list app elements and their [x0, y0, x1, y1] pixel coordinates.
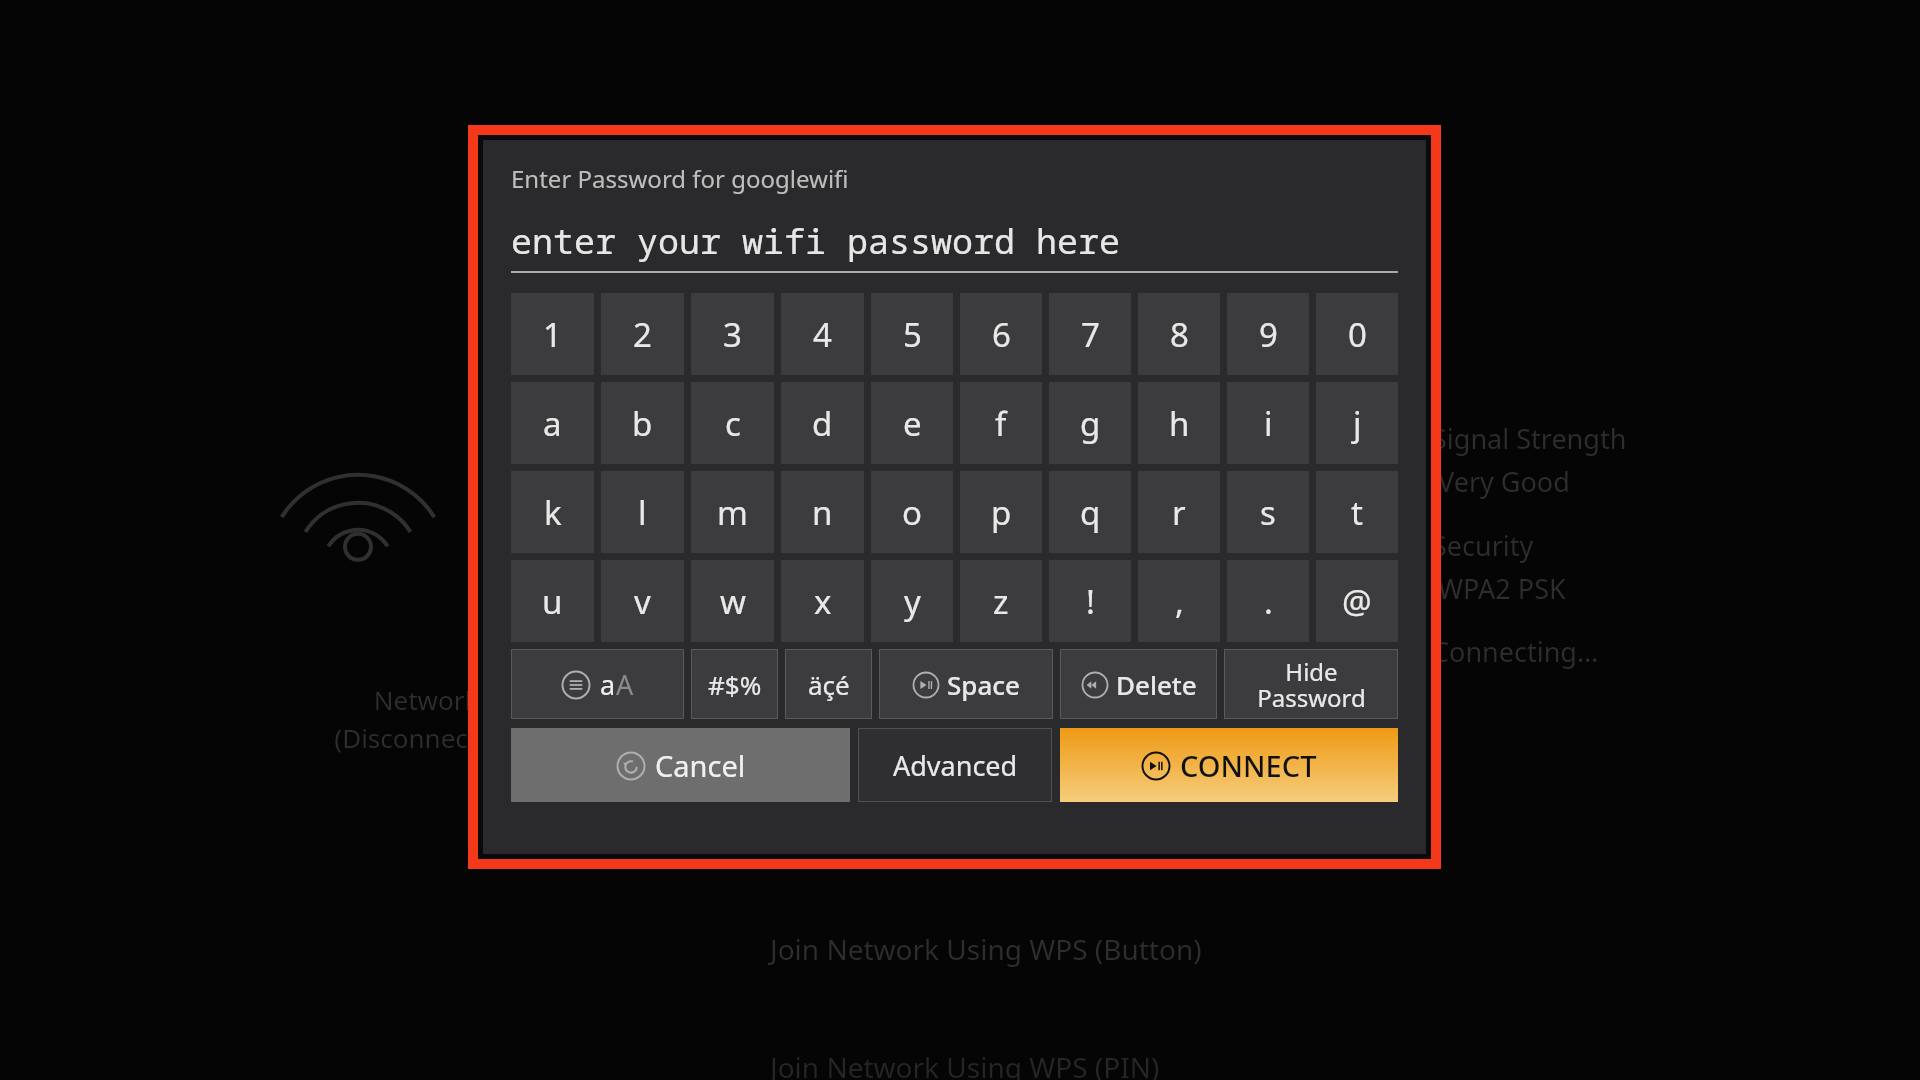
button[interactable]: 7 — [1049, 293, 1131, 375]
button[interactable]: äçé — [785, 649, 872, 719]
button[interactable]: h — [1138, 382, 1220, 464]
staticText: r — [1172, 490, 1186, 535]
button[interactable]: p — [960, 471, 1042, 553]
staticText: enter your wifi password here — [511, 217, 1121, 265]
staticText: äçé — [808, 667, 850, 702]
staticText: n — [812, 490, 833, 535]
staticText: a — [600, 666, 616, 703]
button[interactable]: r — [1138, 471, 1220, 553]
button[interactable]: 5 — [871, 293, 953, 375]
button[interactable]: j — [1316, 382, 1398, 464]
button[interactable]: Space — [879, 649, 1053, 719]
button[interactable]: #$% — [691, 649, 778, 719]
staticText: (Disconnected) — [240, 720, 610, 755]
button[interactable]: m — [691, 471, 774, 553]
button[interactable]: e — [871, 382, 953, 464]
staticText: t — [1351, 490, 1363, 535]
button[interactable]: n — [781, 471, 864, 553]
staticText: g — [1080, 401, 1101, 446]
staticText: o — [902, 490, 922, 535]
button[interactable]: 8 — [1138, 293, 1220, 375]
staticText: Very Good — [1438, 463, 1798, 500]
staticText: d — [812, 401, 833, 446]
staticText: l — [638, 490, 647, 535]
button[interactable]: 9 — [1227, 293, 1309, 375]
button[interactable]: u — [511, 560, 594, 642]
staticText: v — [634, 579, 651, 624]
button[interactable]: , — [1138, 560, 1220, 642]
staticText: u — [542, 579, 563, 624]
staticText: WPA2 PSK — [1438, 570, 1798, 607]
button[interactable]: ! — [1049, 560, 1131, 642]
staticText: 9 — [1259, 312, 1278, 357]
button[interactable]: w — [691, 560, 774, 642]
button[interactable]: 4 — [781, 293, 864, 375]
button[interactable]: y — [871, 560, 953, 642]
button[interactable]: 1 — [511, 293, 594, 375]
staticText: Hide Password — [1257, 655, 1366, 714]
staticText: 3 — [723, 312, 742, 357]
staticText: CONNECT — [1180, 746, 1317, 785]
staticText: 4 — [813, 312, 832, 357]
button[interactable]: i — [1227, 382, 1309, 464]
button[interactable]: z — [960, 560, 1042, 642]
button[interactable]: Cancel — [511, 728, 850, 802]
staticText: 8 — [1170, 312, 1189, 357]
button[interactable]: @ — [1316, 560, 1398, 642]
button[interactable]: b — [601, 382, 684, 464]
staticText: Join Network Using WPS (Button) — [770, 930, 1470, 968]
staticText: q — [1080, 490, 1101, 535]
staticText: w — [720, 579, 746, 624]
staticText: . — [1264, 579, 1273, 624]
button[interactable]: CONNECT — [1060, 728, 1398, 802]
button[interactable]: 6 — [960, 293, 1042, 375]
staticText: a — [543, 401, 562, 446]
staticText: A — [616, 666, 634, 703]
button[interactable]: d — [781, 382, 864, 464]
staticText: Advanced — [893, 747, 1018, 784]
staticText: 0 — [1348, 312, 1367, 357]
button[interactable]: 0 — [1316, 293, 1398, 375]
staticText: Join Network Using WPS (PIN) — [770, 1048, 1470, 1080]
button[interactable]: q — [1049, 471, 1131, 553]
button[interactable]: x — [781, 560, 864, 642]
staticText: Enter Password for googlewifi — [511, 162, 849, 195]
button[interactable]: Delete — [1060, 649, 1217, 719]
staticText: Security — [1432, 527, 1792, 564]
button[interactable]: g — [1049, 382, 1131, 464]
staticText: Delete — [1116, 667, 1197, 702]
staticText: 6 — [992, 312, 1011, 357]
button[interactable]: f — [960, 382, 1042, 464]
button[interactable]: s — [1227, 471, 1309, 553]
button[interactable]: Advanced — [858, 728, 1052, 802]
staticText: @ — [1342, 579, 1372, 624]
staticText: 2 — [633, 312, 652, 357]
staticText: 7 — [1081, 312, 1100, 357]
staticText: Connecting… — [1432, 633, 1792, 670]
staticText: y — [904, 579, 921, 624]
staticText: s — [1260, 490, 1276, 535]
staticText: h — [1169, 401, 1190, 446]
button[interactable]: 3 — [691, 293, 774, 375]
button[interactable]: a — [511, 382, 594, 464]
staticText: #$% — [708, 667, 762, 702]
staticText: z — [993, 579, 1009, 624]
button[interactable]: k — [511, 471, 594, 553]
button[interactable]: t — [1316, 471, 1398, 553]
button[interactable]: 2 — [601, 293, 684, 375]
button[interactable]: v — [601, 560, 684, 642]
staticText: m — [717, 490, 748, 535]
staticText: Network — [296, 682, 556, 717]
button[interactable]: . — [1227, 560, 1309, 642]
staticText: b — [632, 401, 653, 446]
button[interactable]: o — [871, 471, 953, 553]
button[interactable]: Hide Password — [1224, 649, 1398, 719]
button[interactable]: a — [511, 649, 684, 719]
staticText: ! — [1086, 579, 1095, 624]
button[interactable]: l — [601, 471, 684, 553]
staticText: 5 — [903, 312, 922, 357]
button[interactable]: c — [691, 382, 774, 464]
staticText: x — [814, 579, 832, 624]
staticText: f — [995, 401, 1007, 446]
staticText: , — [1175, 579, 1184, 624]
